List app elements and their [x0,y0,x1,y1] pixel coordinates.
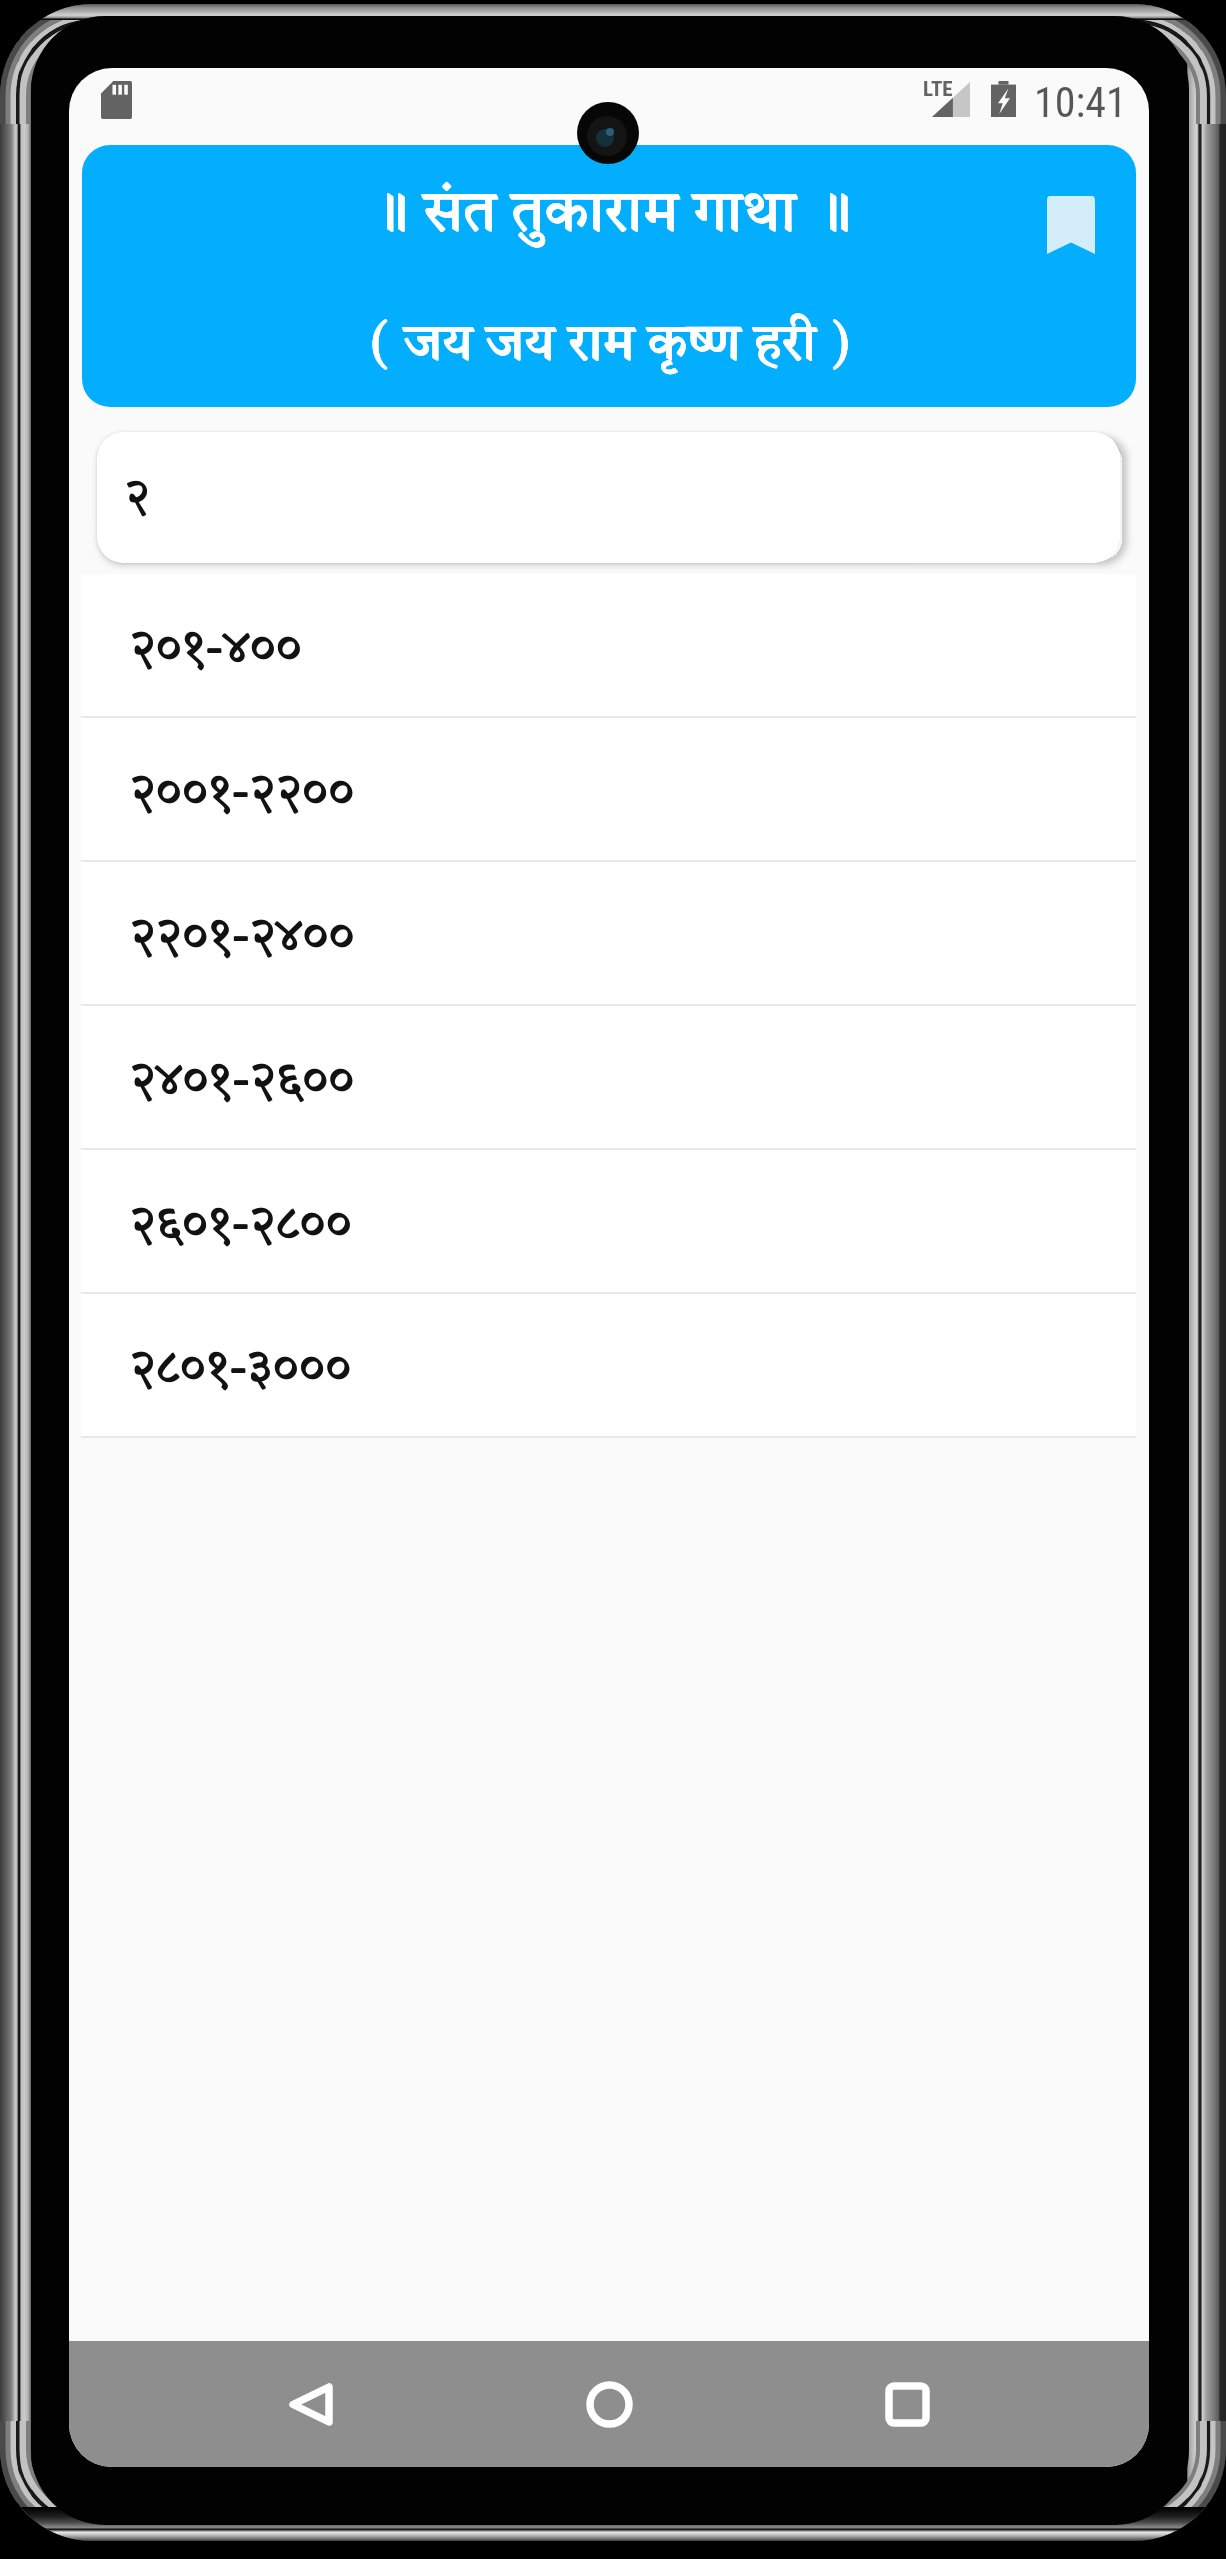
button[interactable]: Home [553,2348,665,2460]
button[interactable]: Bookmarks [1023,177,1119,273]
button[interactable]: २८०१-३००० [81,1294,1136,1436]
staticText: २८०१-३००० [129,1346,351,1395]
staticText: २ [125,474,151,521]
staticText: २०१-४०० [129,625,302,674]
button[interactable]: Back [255,2348,367,2460]
staticText: २ [124,474,150,521]
staticText: २४०१-२६०० [129,1057,355,1106]
staticText: २००१-२२०० [129,770,354,819]
staticText: ॥ संत तुकाराम गाथा ॥ [367,186,851,244]
staticText: २४०१-२६०० [130,1057,356,1106]
staticText: २६०१-२८०० [129,1201,352,1250]
button[interactable]: २४०१-२६०० [81,1006,1136,1148]
staticText: २००१-२२०० [129,769,354,818]
staticText: २२०१-२४०० [129,914,355,963]
button[interactable]: २ [97,432,1120,563]
staticText: २०१-४०० [130,626,303,675]
staticText: २४०१-२६०० [129,1058,355,1107]
staticText: २०१-४०० [130,625,303,674]
staticText: LTE [923,77,953,102]
staticText: २ [125,475,151,522]
staticText: २६०१-२८०० [130,1201,353,1250]
button[interactable]: २०१-४०० [81,574,1136,716]
staticText: २६०१-२८०० [129,1202,352,1251]
staticText: २२०१-२४०० [129,913,355,962]
staticText: २२०१-२४०० [130,914,356,963]
staticText: २८०१-३००० [130,1345,352,1394]
staticText: ॥ संत तुकाराम गाथा ॥ [368,187,852,245]
staticText: ( जय जय राम कृष्ण हरी ) [369,320,850,372]
button[interactable]: २६०१-२८०० [81,1150,1136,1292]
staticText: २८०१-३००० [129,1345,351,1394]
staticText: २००१-२२०० [130,769,355,818]
staticText: 10:41 [1034,78,1127,127]
staticText: २६०१-२८०० [130,1202,353,1251]
button[interactable]: २००१-२२०० [81,718,1136,860]
staticText: ( जय जय राम कृष्ण हरी ) [370,321,851,373]
staticText: २ [124,475,150,522]
staticText: ( जय जय राम कृष्ण हरी ) [370,320,851,372]
button[interactable]: Recent apps [851,2348,963,2460]
button[interactable]: २२०१-२४०० [81,862,1136,1004]
staticText: २२०१-२४०० [130,913,356,962]
staticText: २४०१-२६०० [130,1058,356,1107]
button[interactable]: ॥ संत तुकाराम गाथा ॥ [82,145,1136,407]
staticText: २००१-२२०० [130,770,355,819]
staticText: २८०१-३००० [130,1346,352,1395]
staticText: ( जय जय राम कृष्ण हरी ) [369,321,850,373]
staticText: ॥ संत तुकाराम गाथा ॥ [367,187,851,245]
staticText: ॥ संत तुकाराम गाथा ॥ [368,186,852,244]
staticText: २०१-४०० [129,626,302,675]
